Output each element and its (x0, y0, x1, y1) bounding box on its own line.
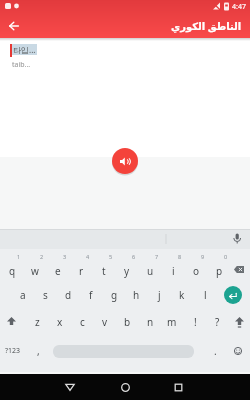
button[interactable] (1, 313, 21, 331)
button[interactable]: l (195, 286, 215, 304)
button[interactable]: , (28, 342, 48, 360)
staticText: d (65, 288, 72, 302)
button[interactable] (229, 342, 247, 360)
staticText: 타입... (13, 44, 36, 55)
staticText: 1 (17, 253, 21, 260)
staticText: m (167, 315, 177, 329)
staticText: 4:47 (232, 2, 246, 12)
button[interactable]: k (172, 286, 192, 304)
button[interactable]: o (186, 262, 206, 280)
staticText: c (80, 315, 85, 329)
staticText: a (20, 288, 26, 302)
button[interactable]: n (140, 313, 160, 331)
staticText: r (79, 264, 84, 278)
staticText: . (214, 344, 217, 358)
button[interactable] (224, 286, 242, 304)
button[interactable]: e (48, 262, 68, 280)
staticText: ? (215, 315, 220, 329)
staticText: k (179, 288, 185, 302)
staticText: z (35, 315, 40, 329)
button[interactable]: ?123 (3, 342, 23, 360)
staticText: b (124, 315, 131, 329)
button[interactable] (229, 313, 249, 331)
staticText: y (124, 264, 130, 278)
staticText: j (158, 288, 161, 302)
staticText: , (37, 344, 40, 358)
button[interactable]: s (35, 286, 55, 304)
staticText: n (147, 315, 154, 329)
staticText: 8 (178, 253, 182, 260)
staticText: p (216, 264, 223, 278)
staticText: l (204, 288, 207, 302)
button[interactable]: c (72, 313, 92, 331)
staticText: 4 (86, 253, 90, 260)
staticText: e (55, 264, 61, 278)
button[interactable]: g (104, 286, 124, 304)
staticText: ! (194, 315, 197, 329)
button[interactable]: r (71, 262, 91, 280)
staticText: g (111, 288, 118, 302)
button[interactable]: . (205, 342, 225, 360)
button[interactable]: u (140, 262, 160, 280)
button[interactable]: ? (207, 313, 227, 331)
button[interactable]: v (95, 313, 115, 331)
staticText: 5 (109, 253, 113, 260)
button[interactable]: f (81, 286, 101, 304)
staticText: v (102, 315, 108, 329)
staticText: f (89, 288, 93, 302)
button[interactable]: d (58, 286, 78, 304)
button[interactable]: m (162, 313, 182, 331)
button[interactable] (168, 377, 188, 397)
staticText: 0 (224, 253, 228, 260)
staticText: w (31, 264, 39, 278)
button[interactable] (115, 377, 135, 397)
button[interactable] (6, 18, 22, 34)
staticText: u (147, 264, 154, 278)
button[interactable]: q (2, 262, 22, 280)
staticText: taib... (12, 60, 31, 70)
button[interactable] (229, 260, 249, 278)
button[interactable]: x (50, 313, 70, 331)
staticText: 9 (201, 253, 205, 260)
button[interactable]: j (149, 286, 169, 304)
staticText: q (9, 264, 16, 278)
button[interactable]: b (117, 313, 137, 331)
button[interactable]: a (13, 286, 33, 304)
button[interactable]: z (27, 313, 47, 331)
staticText: 7 (155, 253, 159, 260)
button[interactable]: ! (185, 313, 205, 331)
button[interactable] (60, 377, 80, 397)
button[interactable]: y (117, 262, 137, 280)
staticText: s (43, 288, 48, 302)
staticText: x (57, 315, 63, 329)
staticText: h (133, 288, 140, 302)
button[interactable]: i (163, 262, 183, 280)
staticText: t (102, 264, 106, 278)
staticText: i (172, 264, 175, 278)
button[interactable] (112, 148, 138, 174)
button[interactable]: t (94, 262, 114, 280)
button[interactable]: w (25, 262, 45, 280)
staticText: 2 (40, 253, 44, 260)
button[interactable]: p (209, 262, 229, 280)
staticText: o (193, 264, 200, 278)
staticText: الناطق الكوري (171, 19, 242, 33)
staticText: ?123 (5, 346, 21, 356)
staticText: 6 (132, 253, 136, 260)
staticText: 3 (63, 253, 67, 260)
button[interactable]: h (126, 286, 146, 304)
